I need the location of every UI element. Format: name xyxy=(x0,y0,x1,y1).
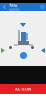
staticText: ACTION xyxy=(15,86,31,92)
staticText: Title xyxy=(9,3,17,8)
staticText: subtitle xyxy=(9,8,20,11)
button[interactable]: Back xyxy=(0,3,9,11)
button[interactable]: Account xyxy=(39,3,46,11)
